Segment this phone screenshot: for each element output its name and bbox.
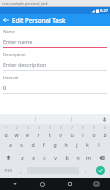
- button[interactable]: g: [49, 139, 60, 150]
- button[interactable]: b: [61, 152, 72, 163]
- button[interactable]: 4: [33, 126, 44, 137]
- staticText: 1: [5, 126, 7, 130]
- staticText: c: [43, 154, 46, 161]
- button[interactable]: z: [17, 152, 28, 163]
- staticText: n: [76, 154, 80, 161]
- button[interactable]: a: [5, 139, 16, 150]
- staticText: com.example.personal_task: [2, 1, 48, 6]
- staticText: e: [26, 131, 29, 137]
- staticText: .: [85, 168, 87, 174]
- button[interactable]: Backspace: [94, 152, 110, 163]
- button[interactable]: s: [16, 139, 27, 150]
- staticText: v: [54, 154, 57, 161]
- staticText: s: [20, 141, 23, 148]
- button[interactable]: Shift: [0, 152, 17, 163]
- staticText: j: [76, 141, 78, 148]
- staticText: k: [86, 141, 89, 148]
- staticText: 8:27: [100, 8, 108, 13]
- staticText: x: [32, 154, 35, 161]
- staticText: Interval: [3, 75, 19, 81]
- staticText: 8: [82, 126, 84, 130]
- staticText: 4: [38, 126, 40, 130]
- button[interactable]: Recent apps: [56, 178, 83, 190]
- staticText: 9: [93, 126, 95, 130]
- button[interactable]: 2: [11, 126, 22, 137]
- staticText: 2: [16, 126, 18, 130]
- button[interactable]: n: [72, 152, 83, 163]
- staticText: 0: [104, 126, 106, 130]
- staticText: q: [4, 131, 8, 137]
- staticText: p: [103, 131, 107, 137]
- button[interactable]: 7: [66, 126, 77, 137]
- button[interactable]: h: [60, 139, 71, 150]
- staticText: Enter description: [3, 61, 47, 68]
- button[interactable]: Voice input: [98, 114, 110, 124]
- button[interactable]: 0: [3, 84, 107, 91]
- button[interactable]: 0: [99, 126, 110, 137]
- staticText: Description: [3, 52, 26, 58]
- staticText: 3: [27, 126, 29, 130]
- button[interactable]: d: [27, 139, 38, 150]
- staticText: 7: [71, 126, 73, 130]
- staticText: 6: [60, 126, 62, 130]
- staticText: 5: [49, 126, 51, 130]
- staticText: d: [31, 141, 35, 148]
- button[interactable]: ,: [15, 165, 26, 176]
- button[interactable]: Switch keyboard: [83, 178, 110, 190]
- button[interactable]: 9: [88, 126, 99, 137]
- staticText: y: [59, 131, 62, 137]
- staticText: f: [43, 141, 45, 148]
- button[interactable]: 3: [22, 126, 33, 137]
- staticText: u: [70, 131, 74, 137]
- staticText: i: [82, 131, 84, 137]
- staticText: g: [53, 141, 57, 148]
- button[interactable]: 8: [77, 126, 88, 137]
- staticText: z: [21, 154, 24, 161]
- staticText: Name: [3, 29, 15, 35]
- staticText: 0: [3, 84, 7, 91]
- button[interactable]: 6: [55, 126, 66, 137]
- button[interactable]: Home: [29, 178, 56, 190]
- staticText: Edit Personal Task: [12, 16, 66, 24]
- button[interactable]: .: [80, 165, 91, 176]
- button[interactable]: c: [39, 152, 50, 163]
- button[interactable]: k: [82, 139, 93, 150]
- button[interactable]: 1: [0, 126, 11, 137]
- button[interactable]: 5: [44, 126, 55, 137]
- button[interactable]: l: [93, 139, 104, 150]
- staticText: o: [92, 131, 96, 137]
- button[interactable]: m: [83, 152, 94, 163]
- staticText: ,: [20, 168, 22, 174]
- staticText: r: [37, 131, 40, 137]
- button[interactable]: Enter description: [3, 61, 107, 68]
- staticText: Enter name: [3, 38, 33, 45]
- staticText: w: [14, 131, 19, 137]
- staticText: l: [98, 141, 100, 148]
- button[interactable]: Enter: [91, 165, 109, 176]
- staticText: h: [64, 141, 68, 148]
- staticText: m: [86, 154, 91, 161]
- staticText: a: [9, 141, 12, 148]
- staticText: b: [65, 154, 69, 161]
- button[interactable]: j: [71, 139, 82, 150]
- staticText: t: [49, 131, 51, 137]
- button[interactable]: v: [50, 152, 61, 163]
- button[interactable]: f: [38, 139, 49, 150]
- button[interactable]: ?123: [1, 165, 15, 176]
- button[interactable]: x: [28, 152, 39, 163]
- button[interactable]: Enter name: [3, 38, 107, 45]
- staticText: ?123: [4, 168, 12, 173]
- button[interactable]: Hide keyboard: [0, 178, 29, 190]
- button[interactable]: Back: [0, 14, 12, 26]
